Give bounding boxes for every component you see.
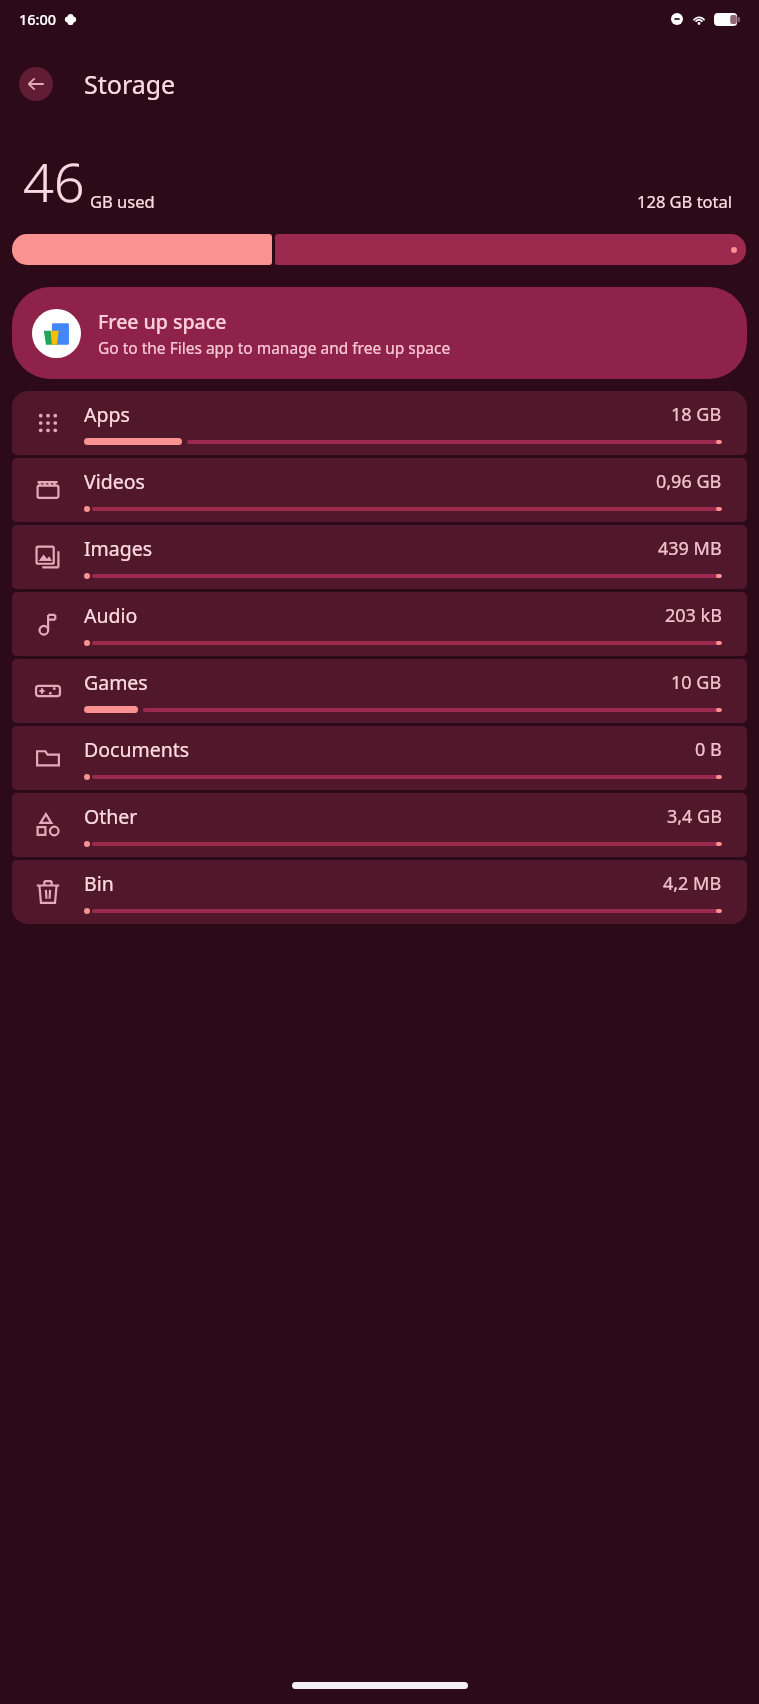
staticText: Images <box>84 535 153 562</box>
staticText: Storage <box>84 67 176 101</box>
button[interactable]: Free up space <box>12 287 747 379</box>
button[interactable]: Images <box>12 525 747 589</box>
staticText: 128 GB total <box>637 190 733 212</box>
button[interactable]: Apps <box>12 391 747 455</box>
staticText: Games <box>84 669 148 696</box>
staticText: 3,4 GB <box>667 804 722 829</box>
staticText: 203 kB <box>665 603 722 628</box>
staticText: 10 GB <box>671 670 722 695</box>
staticText: 0,96 GB <box>656 469 722 494</box>
staticText: 46 <box>23 144 85 218</box>
staticText: 0 B <box>695 737 722 762</box>
staticText: Go to the Files app to manage and free u… <box>98 337 451 358</box>
staticText: Audio <box>84 602 138 629</box>
button[interactable]: Documents <box>12 726 747 790</box>
staticText: 18 GB <box>671 402 722 427</box>
button[interactable]: Other <box>12 793 747 857</box>
button[interactable]: Audio <box>12 592 747 656</box>
staticText: 439 MB <box>658 536 722 561</box>
staticText: 4,2 MB <box>663 871 722 896</box>
staticText: Bin <box>84 870 114 897</box>
staticText: GB used <box>90 190 155 212</box>
button[interactable]: Games <box>12 659 747 723</box>
button[interactable]: Back <box>19 67 53 101</box>
staticText: Apps <box>84 401 130 428</box>
button[interactable]: Videos <box>12 458 747 522</box>
button[interactable]: Bin <box>12 860 747 924</box>
staticText: 16:00 <box>19 9 57 29</box>
staticText: Other <box>84 803 138 830</box>
staticText: Videos <box>84 468 145 495</box>
staticText: Documents <box>84 736 190 763</box>
staticText: Free up space <box>98 308 227 335</box>
